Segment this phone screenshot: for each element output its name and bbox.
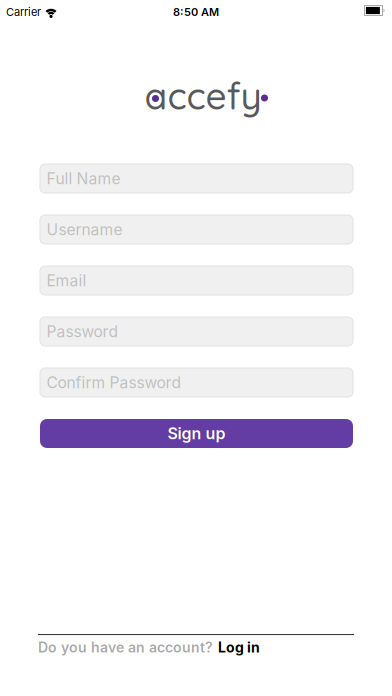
- staticText: Email: [46, 271, 86, 290]
- staticText: Full Name: [46, 169, 120, 188]
- staticText: Username: [46, 220, 122, 239]
- staticText: Log in: [218, 639, 260, 656]
- button[interactable]: Email: [40, 266, 353, 295]
- staticText: Carrier: [6, 5, 41, 19]
- staticText: Password: [46, 322, 118, 341]
- button[interactable]: Password: [40, 317, 353, 346]
- button[interactable]: Full Name: [40, 164, 353, 193]
- staticText: 8:50 AM: [173, 5, 219, 19]
- button[interactable]: Confirm Password: [40, 368, 353, 397]
- staticText: accefy: [144, 72, 261, 119]
- button[interactable]: Sign up: [40, 419, 353, 448]
- staticText: Confirm Password: [46, 373, 181, 392]
- button[interactable]: Do you have an account?: [38, 639, 260, 656]
- staticText: Do you have an account?: [38, 639, 213, 656]
- button[interactable]: Username: [40, 215, 353, 244]
- staticText: Sign up: [167, 424, 225, 443]
